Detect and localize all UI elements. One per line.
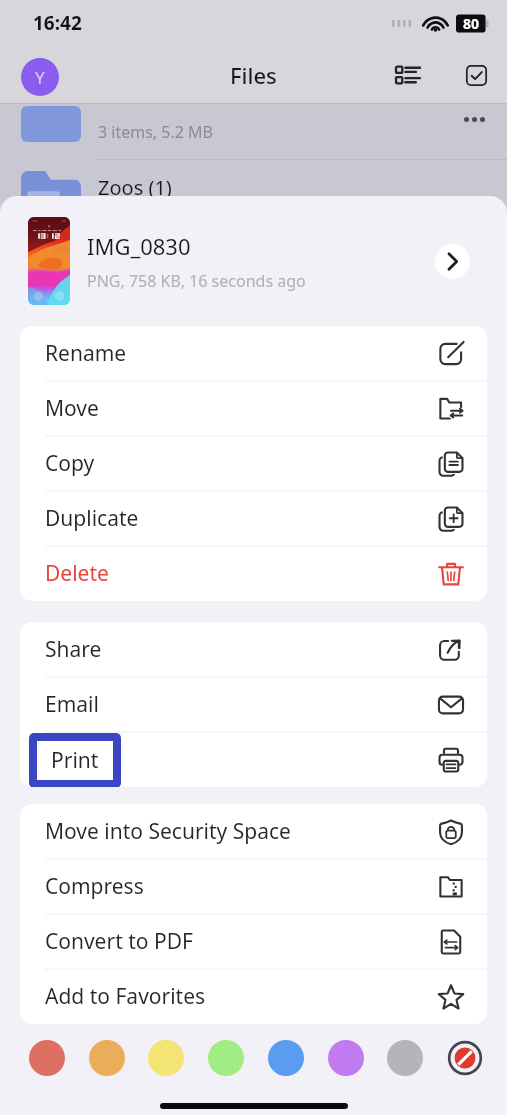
staticText: Share	[45, 635, 102, 664]
staticText: Compress	[45, 872, 144, 901]
button[interactable]: Color tag	[328, 1040, 364, 1076]
staticText: Email	[45, 690, 99, 719]
button[interactable]: Move into Security Space	[20, 804, 487, 859]
button[interactable]: Delete	[20, 546, 487, 601]
staticText: Delete	[45, 559, 109, 588]
button[interactable]: Duplicate	[20, 491, 487, 546]
staticText: Y	[35, 66, 45, 89]
button[interactable]: Select	[454, 53, 498, 97]
staticText: Convert to PDF	[45, 927, 193, 956]
button[interactable]: List view	[386, 53, 430, 97]
staticText: Move	[45, 394, 99, 423]
button[interactable]: No color	[447, 1040, 483, 1076]
staticText: Move into Security Space	[45, 817, 291, 846]
staticText: Print	[51, 746, 99, 775]
staticText: 80	[463, 14, 480, 33]
button[interactable]: Details	[435, 244, 470, 279]
button[interactable]: Print	[20, 732, 487, 787]
staticText: IMG_0830	[87, 231, 191, 261]
staticText: 16:42	[33, 10, 82, 36]
button[interactable]: Compress	[20, 859, 487, 914]
staticText: Duplicate	[45, 504, 139, 533]
staticText: Rename	[45, 339, 127, 368]
button[interactable]: Color tag	[268, 1040, 304, 1076]
staticText: 3 items, 5.2 MB	[98, 121, 213, 143]
button[interactable]: Color tag	[148, 1040, 184, 1076]
button[interactable]: Email	[20, 677, 487, 732]
button[interactable]: Convert to PDF	[20, 914, 487, 969]
button[interactable]: Add to Favorites	[20, 969, 487, 1024]
button[interactable]: Color tag	[29, 1040, 65, 1076]
staticText: Add to Favorites	[45, 982, 206, 1011]
button[interactable]: Color tag	[208, 1040, 244, 1076]
button[interactable]: Color tag	[387, 1040, 423, 1076]
staticText: PNG, 758 KB, 16 seconds ago	[87, 270, 306, 292]
staticText: Zoos (1)	[98, 174, 172, 201]
button[interactable]: Rename	[20, 326, 487, 381]
button[interactable]: Share	[20, 622, 487, 677]
button[interactable]: Move	[20, 381, 487, 436]
button[interactable]: Y	[21, 58, 59, 96]
staticText: Files	[230, 60, 277, 90]
staticText: Copy	[45, 449, 95, 478]
button[interactable]: Copy	[20, 436, 487, 491]
button[interactable]: Color tag	[89, 1040, 125, 1076]
